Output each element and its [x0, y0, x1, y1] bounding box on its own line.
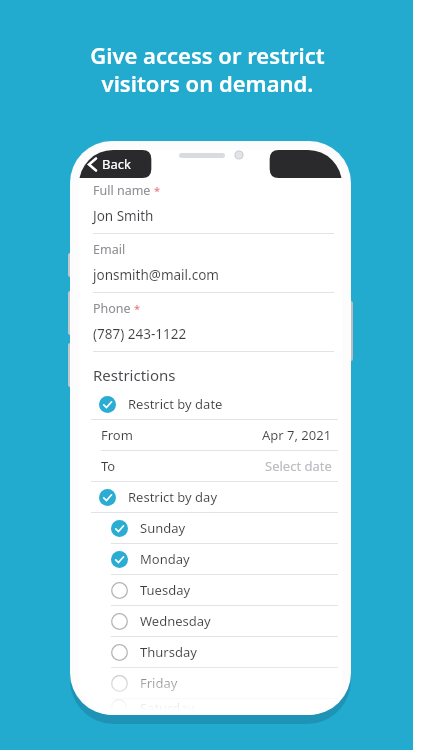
other: Not selected	[111, 699, 128, 715]
other: Not selected	[111, 644, 128, 661]
staticText: *	[154, 183, 161, 198]
staticText: Sunday	[140, 519, 186, 537]
staticText: Restrict by date	[128, 395, 223, 413]
other: Not selected	[111, 675, 128, 692]
staticText: Phone	[93, 300, 131, 317]
staticText: Back	[102, 155, 131, 173]
staticText: Apr 7, 2021	[262, 426, 332, 444]
staticText: Restrictions	[93, 365, 176, 385]
button[interactable]: Phone	[79, 300, 342, 359]
button[interactable]: Not selected	[79, 637, 342, 667]
button[interactable]: To	[79, 451, 342, 481]
button[interactable]: Selected	[79, 544, 342, 574]
other: Not selected	[111, 582, 128, 599]
staticText: Full name	[93, 182, 151, 199]
staticText: Tuesday	[140, 581, 191, 599]
staticText: jonsmith@mail.com	[93, 266, 219, 284]
staticText: Saturday	[140, 699, 195, 715]
button[interactable]: Selected	[79, 482, 342, 512]
other: Not selected	[111, 613, 128, 630]
other: Selected	[99, 489, 116, 506]
other: Selected	[111, 520, 128, 537]
staticText: Restrict by day	[128, 488, 218, 506]
staticText: Wednesday	[140, 612, 211, 630]
button[interactable]: Not selected	[79, 575, 342, 605]
staticText: Select date	[265, 457, 332, 475]
staticText: Friday	[140, 674, 178, 692]
staticText: Give access or restrict visitors on dema…	[90, 40, 325, 98]
staticText: Jon Smith	[93, 207, 154, 225]
button[interactable]: Not selected	[79, 668, 342, 698]
other: Selected	[99, 396, 116, 413]
other: Selected	[111, 551, 128, 568]
button[interactable]: Email	[79, 241, 342, 300]
staticText: *	[134, 301, 141, 316]
button[interactable]: Selected	[79, 513, 342, 543]
button[interactable]: Not selected	[79, 699, 342, 715]
staticText: Monday	[140, 550, 190, 568]
button[interactable]: Back	[85, 150, 139, 178]
staticText: Email	[93, 241, 126, 258]
staticText: (787) 243-1122	[93, 325, 187, 343]
staticText: To	[101, 457, 116, 475]
button[interactable]: Full name	[79, 182, 342, 241]
button[interactable]: Not selected	[79, 606, 342, 636]
staticText: Thursday	[140, 643, 197, 661]
button[interactable]: From	[79, 420, 342, 450]
button[interactable]: Selected	[79, 389, 342, 419]
staticText: From	[101, 426, 133, 444]
